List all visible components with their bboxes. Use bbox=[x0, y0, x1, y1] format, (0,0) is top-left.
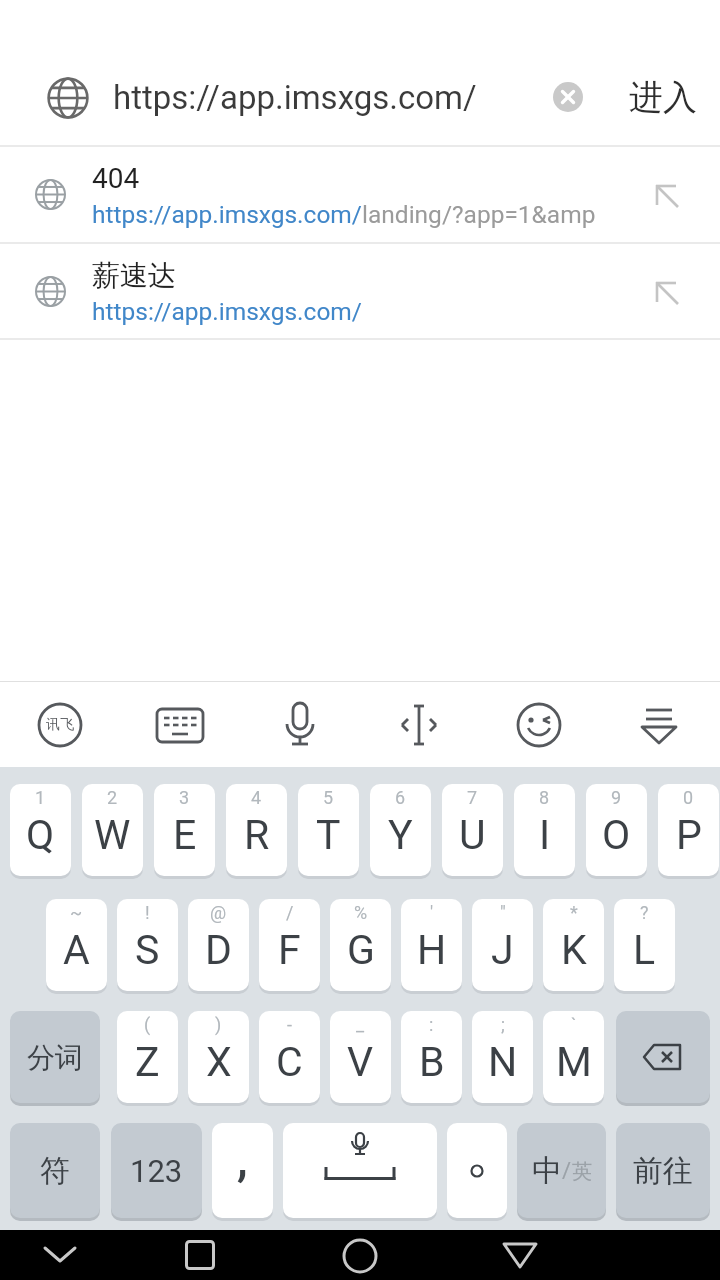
button[interactable]: ` bbox=[543, 1011, 604, 1103]
staticText: T bbox=[316, 811, 341, 859]
button[interactable]: ( bbox=[117, 1011, 178, 1103]
staticText: % bbox=[354, 902, 368, 923]
button[interactable]: : bbox=[401, 1011, 462, 1103]
button[interactable]: 0 bbox=[658, 784, 719, 876]
staticText: / bbox=[286, 902, 294, 923]
button[interactable] bbox=[632, 698, 686, 752]
staticText: 2 bbox=[107, 787, 118, 808]
staticText: " bbox=[500, 902, 506, 923]
staticText: I bbox=[539, 811, 551, 859]
staticText: - bbox=[287, 1014, 292, 1035]
button[interactable]: @ bbox=[188, 899, 249, 991]
button[interactable] bbox=[502, 1242, 538, 1270]
button[interactable]: _ bbox=[330, 1011, 391, 1103]
staticText: : bbox=[429, 1014, 434, 1035]
button[interactable]: 8 bbox=[514, 784, 575, 876]
staticText: L bbox=[633, 926, 656, 974]
button[interactable]: 9 bbox=[586, 784, 647, 876]
staticText: ` bbox=[571, 1014, 577, 1035]
button[interactable]: ; bbox=[472, 1011, 533, 1103]
staticText: C bbox=[276, 1038, 303, 1086]
button[interactable]: ? bbox=[614, 899, 675, 991]
button[interactable] bbox=[273, 698, 327, 752]
staticText: 9 bbox=[611, 787, 622, 808]
staticText: 1 bbox=[35, 787, 46, 808]
button[interactable]: / bbox=[259, 899, 320, 991]
staticText: O bbox=[602, 811, 631, 859]
button[interactable]: ~ bbox=[46, 899, 107, 991]
staticText: F bbox=[278, 926, 301, 974]
button[interactable]: * bbox=[543, 899, 604, 991]
staticText: Y bbox=[388, 811, 413, 859]
staticText: P bbox=[676, 811, 702, 859]
staticText: 3 bbox=[179, 787, 190, 808]
staticText: 404 bbox=[92, 162, 140, 195]
staticText: 进入 bbox=[629, 76, 697, 119]
button[interactable]: 7 bbox=[442, 784, 503, 876]
button[interactable]: 5 bbox=[298, 784, 359, 876]
button[interactable]: ) bbox=[188, 1011, 249, 1103]
staticText: 分词 bbox=[27, 1040, 83, 1075]
staticText: 7 bbox=[467, 787, 478, 808]
button[interactable]: ' bbox=[401, 899, 462, 991]
staticText: @ bbox=[210, 902, 227, 923]
button[interactable] bbox=[447, 1123, 507, 1218]
staticText: 4 bbox=[251, 787, 262, 808]
staticText: ) bbox=[215, 1014, 222, 1035]
button[interactable] bbox=[616, 1011, 710, 1103]
button[interactable] bbox=[40, 1244, 80, 1268]
button[interactable]: " bbox=[472, 899, 533, 991]
button[interactable]: 分词 bbox=[10, 1011, 100, 1103]
staticText: H bbox=[417, 926, 447, 974]
staticText: ; bbox=[501, 1014, 505, 1035]
staticText: 0 bbox=[683, 787, 694, 808]
button[interactable]: 3 bbox=[154, 784, 215, 876]
button[interactable]: % bbox=[330, 899, 391, 991]
staticText: * bbox=[570, 902, 578, 923]
button[interactable]: 符 bbox=[10, 1123, 100, 1218]
button[interactable] bbox=[185, 1240, 215, 1270]
staticText: V bbox=[347, 1038, 374, 1086]
button[interactable]: 中 bbox=[517, 1123, 606, 1218]
button[interactable] bbox=[392, 698, 446, 752]
staticText: / bbox=[562, 1158, 572, 1184]
staticText: U bbox=[459, 811, 486, 859]
button[interactable]: 进入 bbox=[620, 69, 706, 125]
button[interactable]: 123 bbox=[111, 1123, 202, 1218]
staticText: ? bbox=[640, 902, 649, 923]
staticText: X bbox=[206, 1038, 232, 1086]
staticText: ( bbox=[144, 1014, 151, 1035]
button[interactable] bbox=[283, 1123, 437, 1218]
staticText: 符 bbox=[40, 1152, 70, 1190]
button[interactable]: 6 bbox=[370, 784, 431, 876]
staticText: 英 bbox=[572, 1159, 592, 1184]
button[interactable]: 薪速达 bbox=[0, 244, 720, 338]
button[interactable]: 4 bbox=[226, 784, 287, 876]
button[interactable]: 2 bbox=[82, 784, 143, 876]
button[interactable]: 1 bbox=[10, 784, 71, 876]
staticText: Q bbox=[26, 811, 55, 859]
staticText: https://app.imsxgs.com/ bbox=[113, 78, 477, 117]
staticText: https://app.imsxgs.com/ bbox=[92, 297, 362, 326]
staticText: Z bbox=[135, 1038, 160, 1086]
button[interactable]: 前往 bbox=[616, 1123, 710, 1218]
button[interactable] bbox=[344, 1240, 376, 1272]
staticText: https://app.imsxgs.com/ bbox=[92, 200, 362, 229]
staticText: 6 bbox=[395, 787, 406, 808]
staticText: landing/?app=1&amp bbox=[362, 200, 596, 229]
staticText: N bbox=[488, 1038, 518, 1086]
staticText: G bbox=[347, 926, 375, 974]
staticText: , bbox=[237, 1131, 248, 1187]
button[interactable] bbox=[512, 698, 566, 752]
button[interactable]: - bbox=[259, 1011, 320, 1103]
button[interactable]: 404 bbox=[0, 147, 720, 242]
staticText: A bbox=[63, 926, 90, 974]
button[interactable] bbox=[552, 81, 584, 113]
button[interactable]: ! bbox=[117, 899, 178, 991]
staticText: J bbox=[491, 926, 514, 974]
staticText: 8 bbox=[539, 787, 550, 808]
button[interactable]: 讯飞 bbox=[33, 698, 87, 752]
staticText: S bbox=[135, 926, 160, 974]
button[interactable]: , bbox=[212, 1123, 273, 1218]
button[interactable] bbox=[153, 698, 207, 752]
